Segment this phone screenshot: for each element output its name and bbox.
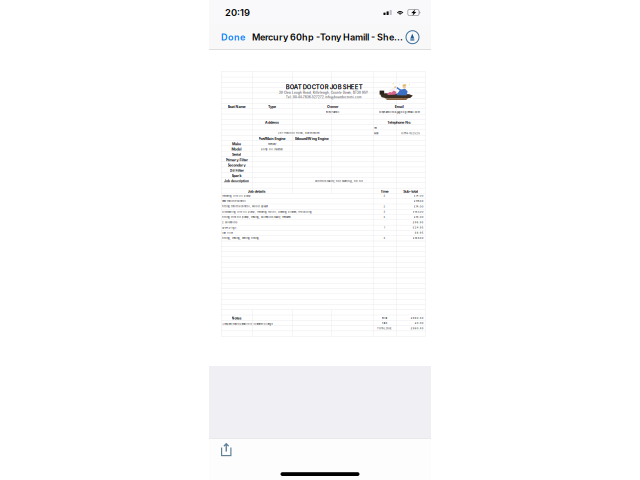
staticText: Job details bbox=[247, 189, 265, 194]
button[interactable]: Done bbox=[221, 32, 246, 43]
staticText: 1 bbox=[384, 226, 385, 229]
staticText: 20:19 bbox=[225, 7, 250, 18]
staticText: 2 bbox=[383, 194, 385, 197]
staticText: £74.00 bbox=[414, 215, 424, 219]
staticText: Notes bbox=[231, 316, 241, 320]
staticText: spark plugs bbox=[222, 226, 236, 229]
staticText: fuel filter bbox=[222, 231, 233, 234]
staticText: Mob bbox=[374, 132, 379, 135]
staticText: fitting trim tilt pump, testing, solenoi… bbox=[222, 215, 291, 218]
staticText: 2 bbox=[383, 205, 385, 208]
staticText: Done bbox=[221, 32, 245, 43]
staticText: £165.00 bbox=[413, 210, 424, 213]
staticText: 3 bbox=[383, 210, 385, 213]
staticText: 2 bbox=[383, 215, 385, 219]
staticText: Type bbox=[268, 105, 276, 109]
staticText: £165.00 bbox=[413, 237, 424, 240]
staticText: 261 Harbour Road, Ballyhalbert bbox=[278, 131, 320, 134]
staticText: Oil Filter bbox=[229, 168, 243, 173]
button[interactable]: Share bbox=[221, 443, 231, 456]
staticText: £960.40 bbox=[411, 316, 424, 320]
staticText: Cheques made payable to Grahame Strange bbox=[222, 322, 272, 325]
staticText: Sub-total bbox=[403, 189, 418, 194]
staticText: Stboard/Wing Engine bbox=[295, 137, 329, 141]
staticText: 07714-152525 bbox=[401, 132, 420, 135]
staticText: Serial bbox=[232, 152, 241, 157]
staticText: Email bbox=[395, 105, 404, 109]
staticText: mercury bbox=[268, 142, 276, 145]
staticText: Total bbox=[381, 316, 387, 320]
staticText: removing trim tilt pump bbox=[222, 194, 251, 197]
staticText: Secondary bbox=[227, 163, 245, 167]
staticText: 60hp oil injected bbox=[261, 148, 283, 151]
staticText: Boat Name bbox=[227, 105, 245, 109]
staticText: Telephone No. bbox=[387, 120, 411, 125]
staticText: Time bbox=[380, 189, 388, 194]
staticText: Tony Hamill bbox=[325, 111, 339, 114]
staticText: Mercury 60hp -Tony Hamill - She... bbox=[252, 32, 403, 43]
staticText: TOTAL DUE bbox=[377, 327, 392, 330]
staticText: £74.00 bbox=[414, 194, 424, 197]
staticText: Owner bbox=[327, 105, 338, 109]
staticText: Spark bbox=[231, 173, 241, 178]
staticText: £6.95 bbox=[415, 231, 424, 234]
staticText: fitting, testing, setting timing bbox=[222, 237, 259, 240]
staticText: new throttle control bbox=[222, 200, 246, 203]
staticText: Address bbox=[265, 120, 279, 125]
staticText: £24.95 bbox=[413, 226, 424, 229]
staticText: Model bbox=[231, 147, 241, 151]
staticText: controls faulty, not starting, no tilt bbox=[315, 179, 363, 183]
staticText: £96.95 bbox=[413, 221, 424, 224]
staticText: Tel bbox=[374, 127, 377, 130]
staticText: dismantling trim tilt pump, removing mot… bbox=[222, 210, 312, 213]
staticText: Paid bbox=[381, 322, 387, 325]
staticText: 3 bbox=[383, 237, 385, 240]
staticText: £960.40 bbox=[411, 327, 424, 330]
staticText: £74.00 bbox=[414, 205, 424, 208]
staticText: Job description bbox=[224, 179, 249, 183]
staticText: Make bbox=[232, 142, 241, 146]
staticText: fitting throttle control, wood spacer bbox=[222, 205, 268, 208]
staticText: BOAT DOCTOR JOB SHEET bbox=[286, 83, 363, 91]
staticText: 2 solenoids bbox=[222, 221, 237, 224]
staticText: £175.00 bbox=[414, 200, 424, 203]
staticText: 30 Clea Lough Road, Killyleagh, County D… bbox=[279, 91, 368, 94]
staticText: £0.00 bbox=[415, 322, 424, 325]
button[interactable]: Markup bbox=[405, 30, 420, 45]
staticText: Primary Filter bbox=[225, 158, 247, 162]
staticText: tonyhamill106@googlemail.com bbox=[379, 111, 420, 114]
staticText: Tel: 00-44-7836-527272 info@boatdoctorni… bbox=[286, 96, 361, 99]
staticText: Port/Main Engine bbox=[258, 137, 285, 141]
